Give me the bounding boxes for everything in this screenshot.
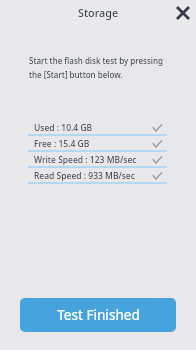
staticText: Read Speed : 933 MB/sec [34, 170, 135, 182]
staticText: Free : 15.4 GB [34, 138, 90, 150]
button[interactable]: Close [171, 1, 195, 25]
button[interactable]: Used : 10.4 GB [28, 120, 167, 136]
staticText: Used : 10.4 GB [34, 122, 93, 134]
staticText: Write Speed : 123 MB/sec [34, 154, 137, 166]
button[interactable]: Free : 15.4 GB [28, 136, 167, 152]
button[interactable]: Read Speed : 933 MB/sec [28, 168, 167, 184]
button[interactable]: Test Finished [20, 298, 176, 332]
button[interactable]: Write Speed : 123 MB/sec [28, 152, 167, 168]
staticText: Test Finished [57, 305, 140, 324]
staticText: Storage [78, 5, 119, 20]
staticText: Start the flash disk test by pressing th… [29, 55, 163, 81]
